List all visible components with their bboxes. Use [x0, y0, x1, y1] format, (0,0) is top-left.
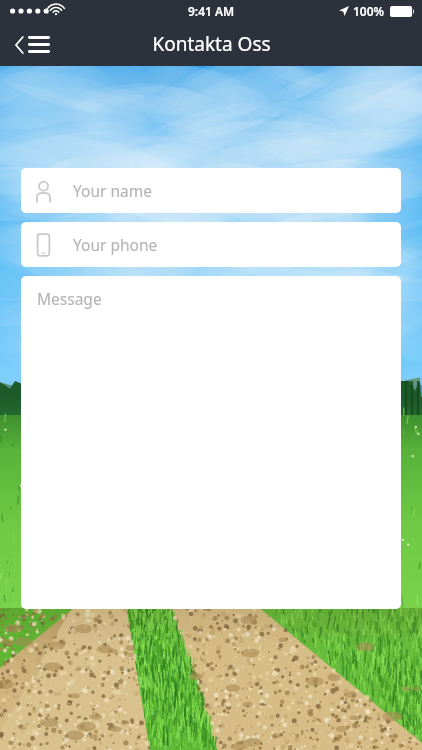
button[interactable]: Your phone — [21, 222, 401, 267]
staticText: 9:41 AM — [188, 3, 235, 19]
staticText: Your phone — [73, 234, 158, 255]
button[interactable]: Your name — [21, 168, 401, 213]
staticText: Your name — [73, 180, 152, 201]
staticText: Message — [37, 288, 102, 309]
button[interactable]: Menu — [8, 30, 58, 59]
staticText: 100% — [353, 3, 385, 19]
staticText: Kontakta Oss — [152, 31, 271, 57]
button[interactable]: Message — [21, 276, 401, 609]
